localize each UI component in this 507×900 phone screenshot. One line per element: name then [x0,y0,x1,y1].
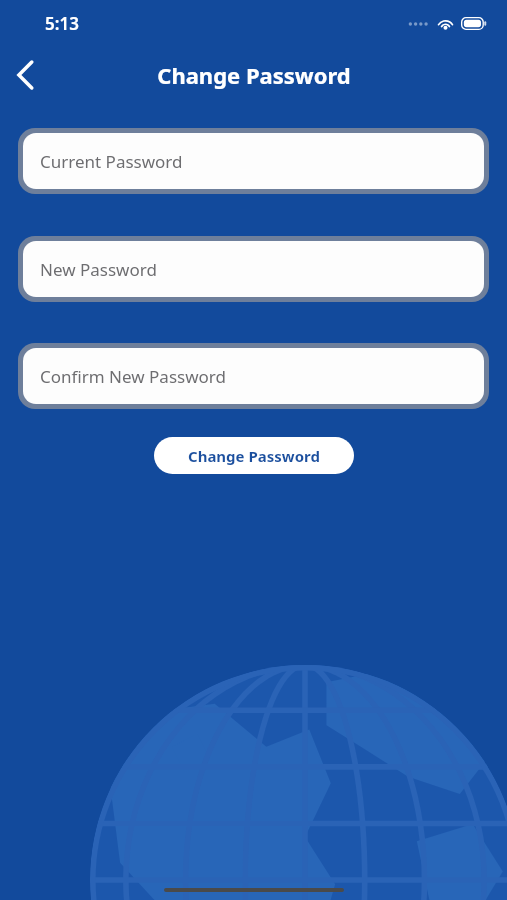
button[interactable]: Current Password [23,133,484,189]
staticText: New Password [40,258,157,281]
button[interactable]: Confirm New Password [23,348,484,404]
staticText: Change Password [188,446,320,466]
staticText: Confirm New Password [40,365,226,388]
button[interactable]: Back [0,50,50,100]
staticText: Current Password [40,150,183,173]
button[interactable]: Change Password [154,437,354,474]
button[interactable]: New Password [23,241,484,297]
staticText: Change Password [157,60,351,90]
staticText: 5:13 [45,12,79,35]
